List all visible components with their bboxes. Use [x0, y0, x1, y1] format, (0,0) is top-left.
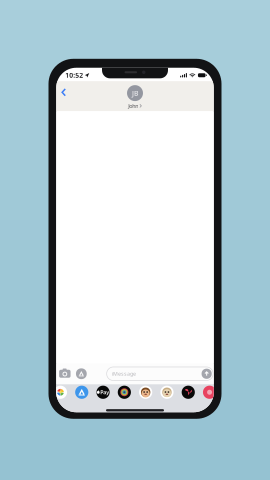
button[interactable]: Memoji	[139, 386, 152, 399]
staticText: iMessage	[112, 370, 136, 377]
button[interactable]: Memoji 2	[160, 386, 173, 399]
staticText: JB	[132, 89, 138, 98]
button[interactable]: Photos	[54, 386, 67, 399]
staticText: 10:52	[65, 71, 83, 80]
button[interactable]: More	[203, 386, 216, 399]
button[interactable]: App Store	[75, 386, 88, 399]
button[interactable]: Camera	[56, 366, 73, 382]
staticText: John	[128, 102, 138, 109]
button[interactable]: Apple Pay	[96, 386, 110, 399]
button[interactable]: JB	[119, 81, 151, 111]
button[interactable]: Apps	[73, 366, 89, 382]
button[interactable]: Back	[57, 84, 70, 100]
button[interactable]: Fitness	[118, 386, 131, 399]
staticText: Pay	[100, 389, 109, 396]
button[interactable]: Send	[201, 369, 212, 379]
button[interactable]: Digital Touch	[182, 386, 195, 399]
